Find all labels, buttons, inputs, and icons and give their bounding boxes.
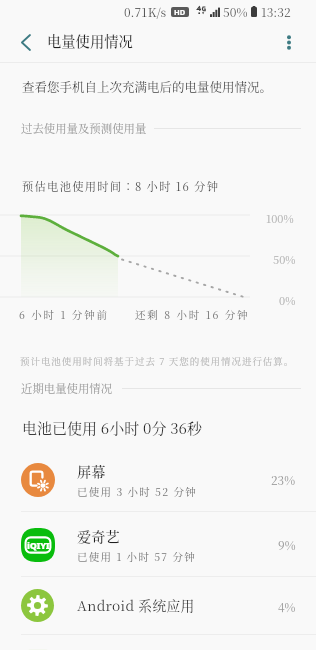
staticText: 0.71K/s	[124, 3, 167, 20]
staticText: 还剩 8 小时 16 分钟	[135, 307, 250, 322]
staticText: 9%	[278, 536, 296, 553]
staticText: iQIYI	[27, 539, 50, 551]
staticText: 过去使用量及预测使用量	[21, 120, 147, 136]
staticText: 13:32	[261, 3, 291, 20]
button[interactable]: Back	[8, 22, 42, 62]
staticText: 50%	[273, 251, 296, 267]
staticText: 0%	[279, 292, 296, 308]
staticText: 4%	[278, 598, 296, 615]
staticText: 近期电量使用情况	[21, 380, 113, 396]
staticText: 预计电池使用时间将基于过去 7 天您的使用情况进行估算。	[20, 354, 295, 368]
button[interactable]: Android 系统应用	[0, 577, 316, 635]
button[interactable]: 屏幕	[0, 447, 316, 512]
staticText: 查看您手机自上次充满电后的电量使用情况。	[22, 78, 273, 96]
staticText: 电池已使用 6小时 0分 36秒	[22, 417, 202, 439]
staticText: 预估电池使用时间：8 小时 16 分钟	[22, 178, 220, 194]
staticText: 屏幕	[77, 461, 106, 481]
staticText: 已使用 3 小时 52 分钟	[77, 484, 198, 499]
staticText: 6 小时 1 分钟前	[19, 307, 109, 322]
button[interactable]: iQIYI	[0, 512, 316, 577]
staticText: 100%	[266, 210, 294, 226]
staticText: 电量使用情况	[47, 31, 133, 52]
staticText: HD	[174, 7, 186, 17]
staticText: 50%	[223, 3, 248, 20]
button[interactable]: More options	[272, 22, 306, 62]
staticText: Android 系统应用	[77, 595, 195, 615]
staticText: 已使用 1 小时 57 分钟	[77, 549, 197, 564]
staticText: 23%	[271, 471, 296, 488]
staticText: 爱奇艺	[77, 526, 120, 546]
